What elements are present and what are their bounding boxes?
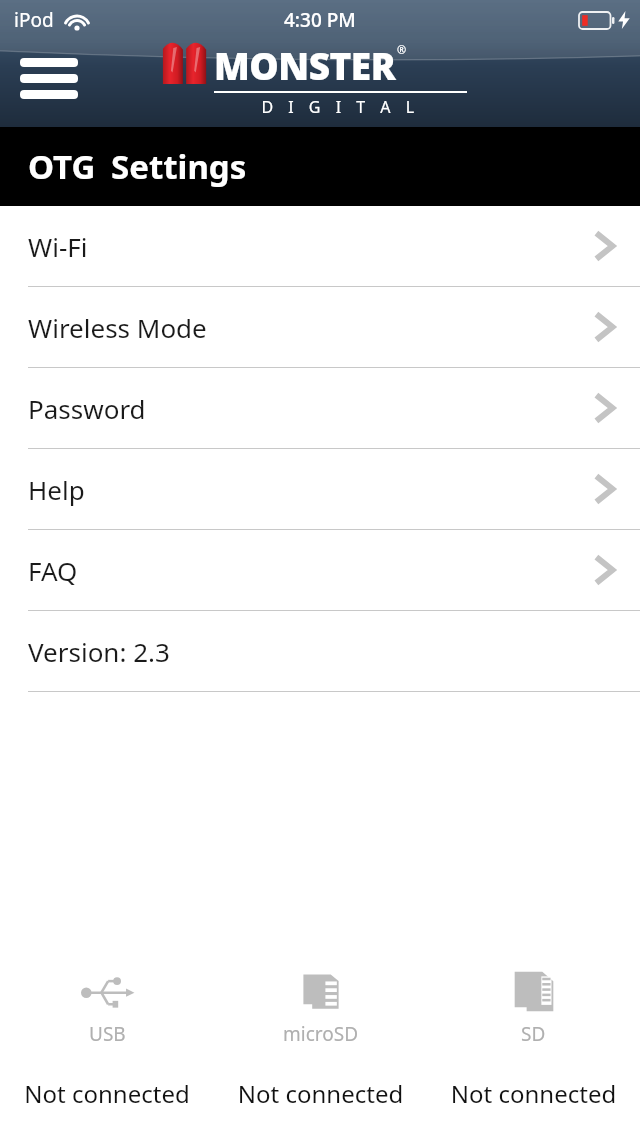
staticText: Password — [28, 391, 146, 426]
button[interactable]: Password — [0, 368, 640, 448]
staticText: iPod — [14, 7, 54, 33]
button[interactable]: Wireless Mode — [0, 287, 640, 367]
staticText: OTG — [28, 144, 96, 189]
staticText: SD — [521, 1021, 546, 1047]
button[interactable]: Help — [0, 449, 640, 529]
staticText: 4:30 PM — [284, 7, 356, 33]
staticText: Wi-Fi — [28, 229, 88, 264]
staticText: Not connected — [0, 1077, 214, 1110]
staticText: Not connected — [214, 1077, 427, 1110]
staticText: USB — [89, 1021, 126, 1047]
staticText: Version: 2.3 — [28, 634, 170, 669]
button[interactable]: Menu — [18, 52, 80, 104]
staticText: D I G I T A L — [214, 96, 467, 118]
staticText: Wireless Mode — [28, 310, 207, 345]
staticText: FAQ — [28, 553, 78, 588]
staticText: Help — [28, 472, 85, 507]
staticText: MONSTER — [214, 40, 396, 90]
staticText: Settings — [111, 144, 247, 189]
staticText: Not connected — [427, 1077, 640, 1110]
staticText: microSD — [283, 1021, 359, 1047]
button[interactable]: Wi-Fi — [0, 206, 640, 286]
button[interactable]: FAQ — [0, 530, 640, 610]
staticText: ® — [397, 42, 407, 57]
